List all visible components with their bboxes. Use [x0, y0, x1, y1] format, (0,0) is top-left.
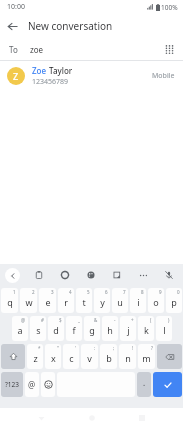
button[interactable]: & — [84, 316, 100, 341]
button[interactable]: 1 — [1, 288, 18, 313]
staticText: # — [41, 317, 44, 323]
button[interactable]: Send — [153, 372, 182, 397]
staticText: 6 — [105, 289, 108, 295]
staticText: x — [51, 352, 56, 364]
staticText: g — [89, 324, 95, 336]
button[interactable]: 8 — [130, 288, 146, 313]
staticText: 4 — [69, 289, 72, 295]
staticText: t — [82, 296, 86, 308]
button[interactable]: 3 — [39, 288, 56, 313]
staticText: o — [153, 296, 159, 308]
staticText: q — [7, 296, 13, 308]
button[interactable]: 7 — [112, 288, 128, 313]
staticText: z — [33, 352, 38, 364]
staticText: ! — [132, 345, 134, 351]
button[interactable]: Recent apps — [132, 408, 152, 428]
button[interactable]: Z — [0, 61, 183, 91]
staticText: v — [87, 352, 92, 364]
button[interactable]: - — [102, 316, 118, 341]
staticText: Mobile — [152, 71, 175, 81]
staticText: b — [106, 352, 112, 364]
staticText: ? — [151, 345, 153, 351]
staticText: @ — [21, 317, 26, 323]
staticText: w — [25, 296, 33, 308]
staticText: h — [107, 324, 113, 336]
staticText: 2 — [32, 289, 35, 295]
staticText: Taylor — [47, 65, 73, 76]
staticText: : — [94, 345, 96, 351]
staticText: ) — [168, 317, 170, 323]
staticText: Zoe — [32, 65, 47, 76]
button[interactable]: ! — [119, 344, 136, 369]
button[interactable]: ?123 — [1, 372, 23, 397]
staticText: + — [131, 317, 134, 323]
staticText: m — [142, 352, 151, 364]
staticText: 5 — [87, 289, 90, 295]
button[interactable]: * — [27, 344, 43, 369]
staticText: 10:00 — [7, 2, 25, 12]
staticText: i — [137, 296, 140, 308]
button[interactable]: ) — [156, 316, 172, 341]
button[interactable]: More options — [135, 267, 151, 283]
staticText: To — [9, 44, 18, 55]
button[interactable]: @ — [12, 316, 28, 341]
staticText: " — [57, 345, 59, 351]
button[interactable]: 6 — [94, 288, 110, 313]
button[interactable]: Shift — [1, 344, 25, 369]
button[interactable]: ( — [138, 316, 154, 341]
button[interactable]: : — [81, 344, 98, 369]
button[interactable]: Themes — [83, 267, 99, 283]
button[interactable]: Clipboard — [31, 267, 47, 283]
staticText: 3 — [51, 289, 54, 295]
button[interactable]: 2 — [20, 288, 37, 313]
staticText: * — [38, 345, 41, 351]
button[interactable]: $ — [48, 316, 64, 341]
button[interactable]: ' — [63, 344, 79, 369]
button[interactable]: Settings — [57, 267, 73, 283]
staticText: - — [114, 317, 116, 323]
staticText: _ — [78, 317, 80, 323]
staticText: l — [163, 324, 166, 336]
button[interactable]: 5 — [76, 288, 92, 313]
staticText: ; — [113, 345, 115, 351]
button[interactable]: " — [45, 344, 61, 369]
staticText: ?123 — [5, 380, 19, 389]
staticText: . — [143, 377, 146, 388]
button[interactable]: Voice input off — [161, 267, 177, 283]
staticText: y — [100, 296, 105, 308]
button[interactable]: ; — [100, 344, 117, 369]
staticText: d — [53, 324, 59, 336]
button[interactable]: Backspace — [157, 344, 182, 369]
button[interactable]: Collapse toolbar — [5, 268, 20, 283]
button[interactable]: . — [137, 372, 151, 397]
staticText: j — [127, 324, 130, 336]
staticText: 8 — [141, 289, 144, 295]
staticText: 1 — [13, 289, 16, 295]
button[interactable]: ? — [138, 344, 155, 369]
button[interactable]: 4 — [58, 288, 74, 313]
staticText: 9 — [159, 289, 162, 295]
button[interactable]: 9 — [148, 288, 164, 313]
staticText: 123456789 — [32, 77, 69, 87]
button[interactable]: @ — [25, 372, 39, 397]
button[interactable]: Emoji — [41, 372, 55, 397]
button[interactable]: + — [120, 316, 136, 341]
button[interactable]: # — [30, 316, 46, 341]
staticText: s — [36, 324, 41, 336]
staticText: c — [69, 352, 74, 364]
staticText: @ — [28, 379, 36, 390]
button[interactable]: 0 — [166, 288, 182, 313]
staticText: n — [125, 352, 131, 364]
staticText: Z — [13, 70, 19, 82]
staticText: a — [17, 324, 23, 336]
button[interactable]: Back — [0, 14, 24, 38]
button[interactable]: Translate — [109, 267, 125, 283]
staticText: New conversation — [28, 19, 113, 33]
staticText: r — [64, 296, 68, 308]
staticText: k — [144, 324, 149, 336]
button[interactable]: Dialpad — [159, 39, 179, 59]
button[interactable]: _ — [66, 316, 82, 341]
